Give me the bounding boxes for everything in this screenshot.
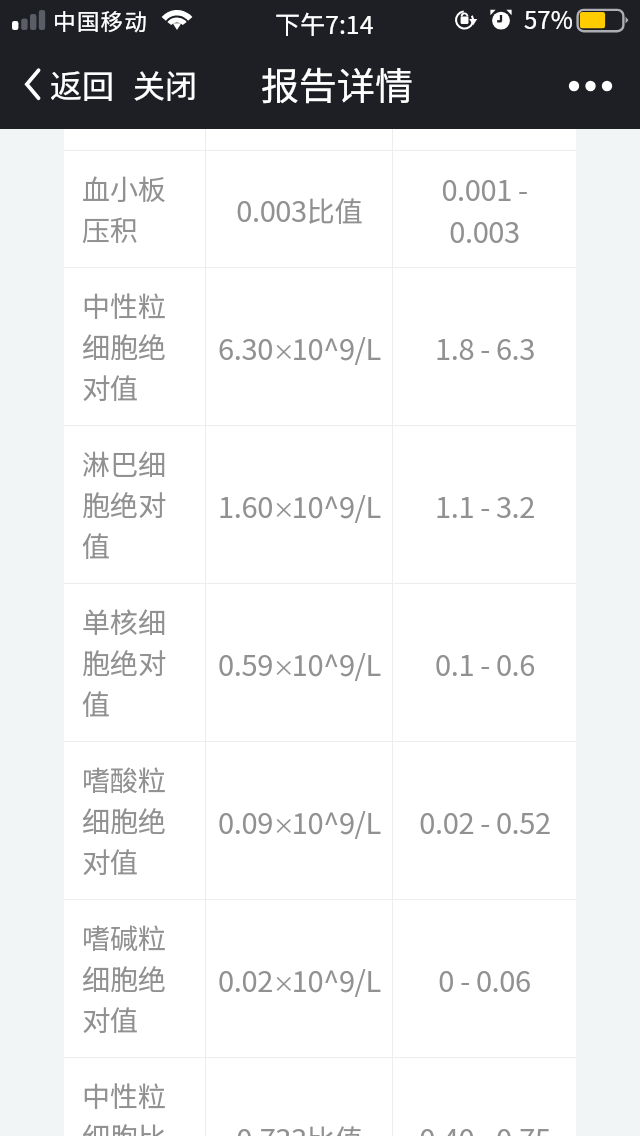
staticText: 0.02×10^9/L — [218, 958, 381, 1000]
staticText: 0.733比值 — [236, 1116, 363, 1136]
staticText: 下午7:14 — [275, 5, 374, 41]
staticText: 胞绝对 — [82, 642, 167, 683]
staticText: 0.001 - — [441, 167, 528, 209]
staticText: 1.60×10^9/L — [218, 484, 381, 526]
button[interactable]: 嗜碱粒 — [64, 900, 576, 1057]
staticText: 0.09×10^9/L — [218, 800, 381, 842]
staticText: 细胞绝 — [82, 326, 167, 367]
staticText: 1.1 - 3.2 — [435, 484, 535, 526]
button[interactable]: 血小板 — [64, 151, 576, 267]
staticText: 值 — [82, 525, 111, 566]
staticText: 值 — [82, 683, 111, 724]
staticText: 关闭 — [133, 61, 198, 107]
button[interactable]: 血小板 — [64, 0, 576, 150]
button[interactable]: 中性粒 — [64, 268, 576, 425]
staticText: 对值 — [82, 999, 139, 1040]
staticText: 6.30×10^9/L — [218, 326, 381, 368]
staticText: 57% — [524, 1, 573, 36]
staticText: 血小板 — [82, 31, 167, 72]
button[interactable]: 嗜酸粒 — [64, 742, 576, 899]
button[interactable]: More options — [545, 51, 631, 121]
staticText: 血小板 — [82, 168, 167, 209]
staticText: 返回 — [50, 61, 115, 107]
button[interactable]: 中性粒 — [64, 1058, 576, 1136]
staticText: 胞绝对 — [82, 484, 167, 525]
staticText: 淋巴细 — [82, 443, 167, 484]
button[interactable]: 淋巴细 — [64, 426, 576, 583]
staticText: 嗜酸粒 — [82, 759, 167, 800]
staticText: 对值 — [82, 841, 139, 882]
staticText: 对值 — [82, 367, 139, 408]
button[interactable]: 关闭 — [123, 53, 208, 115]
staticText: 细胞绝 — [82, 800, 167, 841]
staticText: 0.40 - 0.75 — [419, 1116, 551, 1136]
staticText: 1.8 - 6.3 — [435, 326, 535, 368]
button[interactable]: 单核细 — [64, 584, 576, 741]
staticText: 0.02 - 0.52 — [419, 800, 551, 842]
staticText: 报告详情 — [261, 56, 414, 111]
staticText: 中国移动 — [53, 4, 149, 37]
staticText: 计数 — [82, 72, 139, 113]
staticText: 细胞绝 — [82, 958, 167, 999]
staticText: 0 - 0.06 — [438, 958, 531, 1000]
staticText: 压积 — [82, 209, 139, 250]
staticText: 0.003 — [449, 209, 520, 251]
button[interactable]: 返回 — [13, 53, 121, 115]
staticText: 细胞比 — [82, 1116, 167, 1136]
staticText: 0.003比值 — [236, 188, 363, 230]
staticText: 中性粒 — [82, 1075, 167, 1116]
staticText: 0.1 - 0.6 — [435, 642, 535, 684]
staticText: 嗜碱粒 — [82, 917, 167, 958]
staticText: 中性粒 — [82, 285, 167, 326]
staticText: 单核细 — [82, 601, 167, 642]
staticText: 201×10^9/L — [221, 51, 377, 93]
staticText: 0.59×10^9/L — [218, 642, 381, 684]
